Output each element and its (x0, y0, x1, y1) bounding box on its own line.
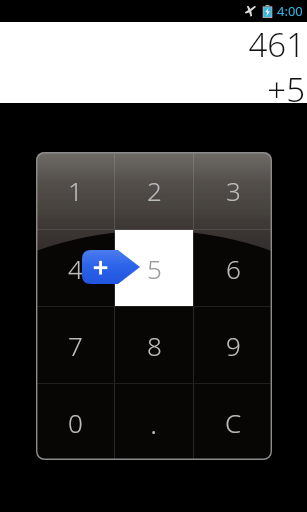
button[interactable]: C (194, 384, 272, 460)
button[interactable]: 7 (36, 307, 114, 383)
button[interactable]: 0 (36, 384, 114, 460)
button[interactable]: 9 (194, 307, 272, 383)
button[interactable]: 4 (36, 230, 114, 306)
staticText: 7 (68, 328, 83, 363)
staticText: 1 (68, 173, 83, 208)
staticText: 8 (147, 328, 162, 363)
staticText: 3 (226, 173, 241, 208)
staticText: C (225, 405, 242, 440)
button[interactable]: . (115, 384, 193, 460)
staticText: 461 (0, 22, 305, 67)
staticText: 4 (68, 251, 83, 286)
staticText: 6 (226, 251, 241, 286)
button[interactable]: 8 (115, 307, 193, 383)
staticText: +5 (0, 67, 305, 103)
button[interactable]: 3 (194, 152, 272, 229)
button[interactable]: Add (82, 250, 140, 284)
button[interactable]: 2 (115, 152, 193, 229)
button[interactable]: 5 (115, 230, 193, 306)
staticText: 2 (147, 173, 162, 208)
staticText: . (150, 402, 158, 443)
staticText: 9 (226, 328, 241, 363)
staticText: 4:00 (277, 2, 303, 20)
staticText: 5 (147, 251, 162, 286)
button[interactable]: 6 (194, 230, 272, 306)
button[interactable]: 1 (36, 152, 114, 229)
staticText: 0 (68, 405, 83, 440)
